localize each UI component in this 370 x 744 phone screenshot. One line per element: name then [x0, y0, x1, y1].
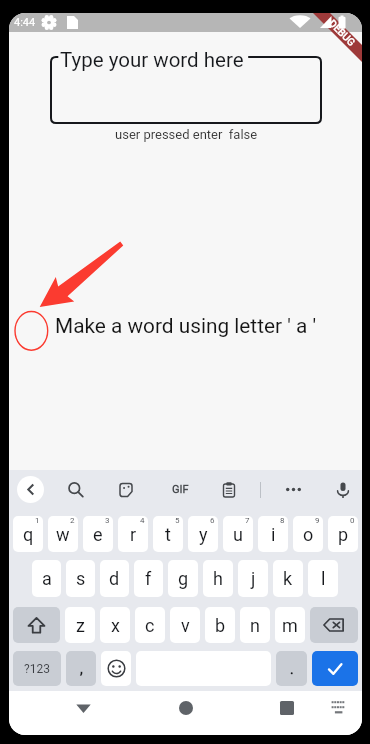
button[interactable]: t — [153, 516, 183, 552]
button[interactable]: x — [100, 607, 130, 643]
staticText: e — [93, 524, 103, 545]
staticText: 5 — [175, 516, 180, 525]
button[interactable]: d — [100, 560, 129, 597]
staticText: w — [56, 524, 70, 545]
button[interactable]: GIF — [167, 476, 194, 503]
staticText: d — [109, 568, 120, 589]
staticText: . — [290, 661, 294, 677]
button[interactable]: Shift — [13, 607, 60, 643]
button[interactable]: h — [203, 560, 233, 597]
button[interactable]: Emoji — [101, 651, 131, 686]
staticText: l — [321, 568, 326, 589]
staticText: c — [145, 615, 155, 636]
staticText: 9 — [315, 516, 320, 525]
button[interactable]: i — [258, 516, 288, 552]
staticText: Type your word here — [60, 48, 244, 72]
button[interactable]: j — [238, 560, 268, 597]
button[interactable]: Voice input — [329, 476, 356, 503]
staticText: y — [199, 524, 208, 545]
button[interactable]: l — [308, 560, 338, 597]
staticText: f — [145, 568, 152, 589]
staticText: n — [250, 615, 260, 636]
button[interactable]: Symbols — [13, 651, 61, 686]
button[interactable]: Recent apps — [265, 695, 309, 720]
staticText: t — [165, 524, 171, 545]
staticText: i — [271, 524, 276, 545]
button[interactable]: Enter — [312, 651, 358, 686]
button[interactable]: y — [188, 516, 218, 552]
staticText: 1 — [35, 516, 40, 525]
button[interactable]: k — [273, 560, 303, 597]
staticText: , — [80, 661, 83, 677]
staticText: b — [215, 615, 226, 636]
staticText: v — [181, 615, 190, 636]
button[interactable]: c — [135, 607, 165, 643]
button[interactable]: o — [293, 516, 323, 552]
staticText: k — [283, 568, 293, 589]
button[interactable]: e — [83, 516, 113, 552]
staticText: q — [23, 524, 34, 545]
staticText: r — [130, 524, 137, 545]
staticText: Make a word using letter ' a ' — [55, 314, 317, 338]
staticText: ?123 — [24, 662, 50, 676]
staticText: 3 — [105, 516, 110, 525]
button[interactable]: n — [240, 607, 270, 643]
button[interactable]: Search — [62, 476, 89, 503]
button[interactable]: w — [48, 516, 78, 552]
staticText: j — [251, 568, 256, 589]
button[interactable]: m — [275, 607, 305, 643]
button[interactable]: Clipboard — [215, 476, 242, 503]
staticText: g — [178, 568, 189, 589]
button[interactable]: Switch keyboard — [316, 695, 360, 720]
staticText: 8 — [280, 516, 285, 525]
button[interactable]: v — [170, 607, 200, 643]
button[interactable]: p — [328, 516, 358, 552]
button[interactable]: q — [13, 516, 43, 552]
staticText: p — [338, 524, 349, 545]
staticText: a — [42, 568, 52, 589]
button[interactable]: Hide keyboard — [61, 695, 105, 720]
staticText: z — [76, 615, 85, 636]
staticText: 6 — [210, 516, 215, 525]
button[interactable]: s — [66, 560, 95, 597]
button[interactable]: Type your word here — [51, 57, 321, 123]
button[interactable]: g — [168, 560, 198, 597]
button[interactable]: z — [65, 607, 95, 643]
staticText: 0 — [350, 516, 355, 525]
staticText: 2 — [70, 516, 75, 525]
button[interactable]: Period — [276, 651, 307, 686]
button[interactable]: More options — [280, 476, 307, 503]
button[interactable]: Home — [164, 695, 208, 720]
staticText: GIF — [172, 483, 189, 496]
staticText: 4 — [140, 516, 145, 525]
staticText: u — [233, 524, 243, 545]
button[interactable]: b — [205, 607, 235, 643]
staticText: m — [282, 615, 298, 636]
button[interactable]: Comma — [66, 651, 96, 686]
button[interactable]: Back — [17, 476, 44, 503]
button[interactable]: r — [118, 516, 148, 552]
button[interactable]: a — [32, 560, 61, 597]
button[interactable]: f — [134, 560, 163, 597]
button[interactable]: Stickers — [112, 476, 139, 503]
staticText: 4:44 — [14, 16, 36, 29]
staticText: user pressed enter false — [115, 127, 258, 142]
button[interactable]: Backspace — [310, 607, 358, 643]
staticText: s — [76, 568, 86, 589]
staticText: x — [111, 615, 120, 636]
staticText: 7 — [245, 516, 250, 525]
staticText: h — [213, 568, 223, 589]
staticText: o — [303, 524, 314, 545]
button[interactable]: u — [223, 516, 253, 552]
